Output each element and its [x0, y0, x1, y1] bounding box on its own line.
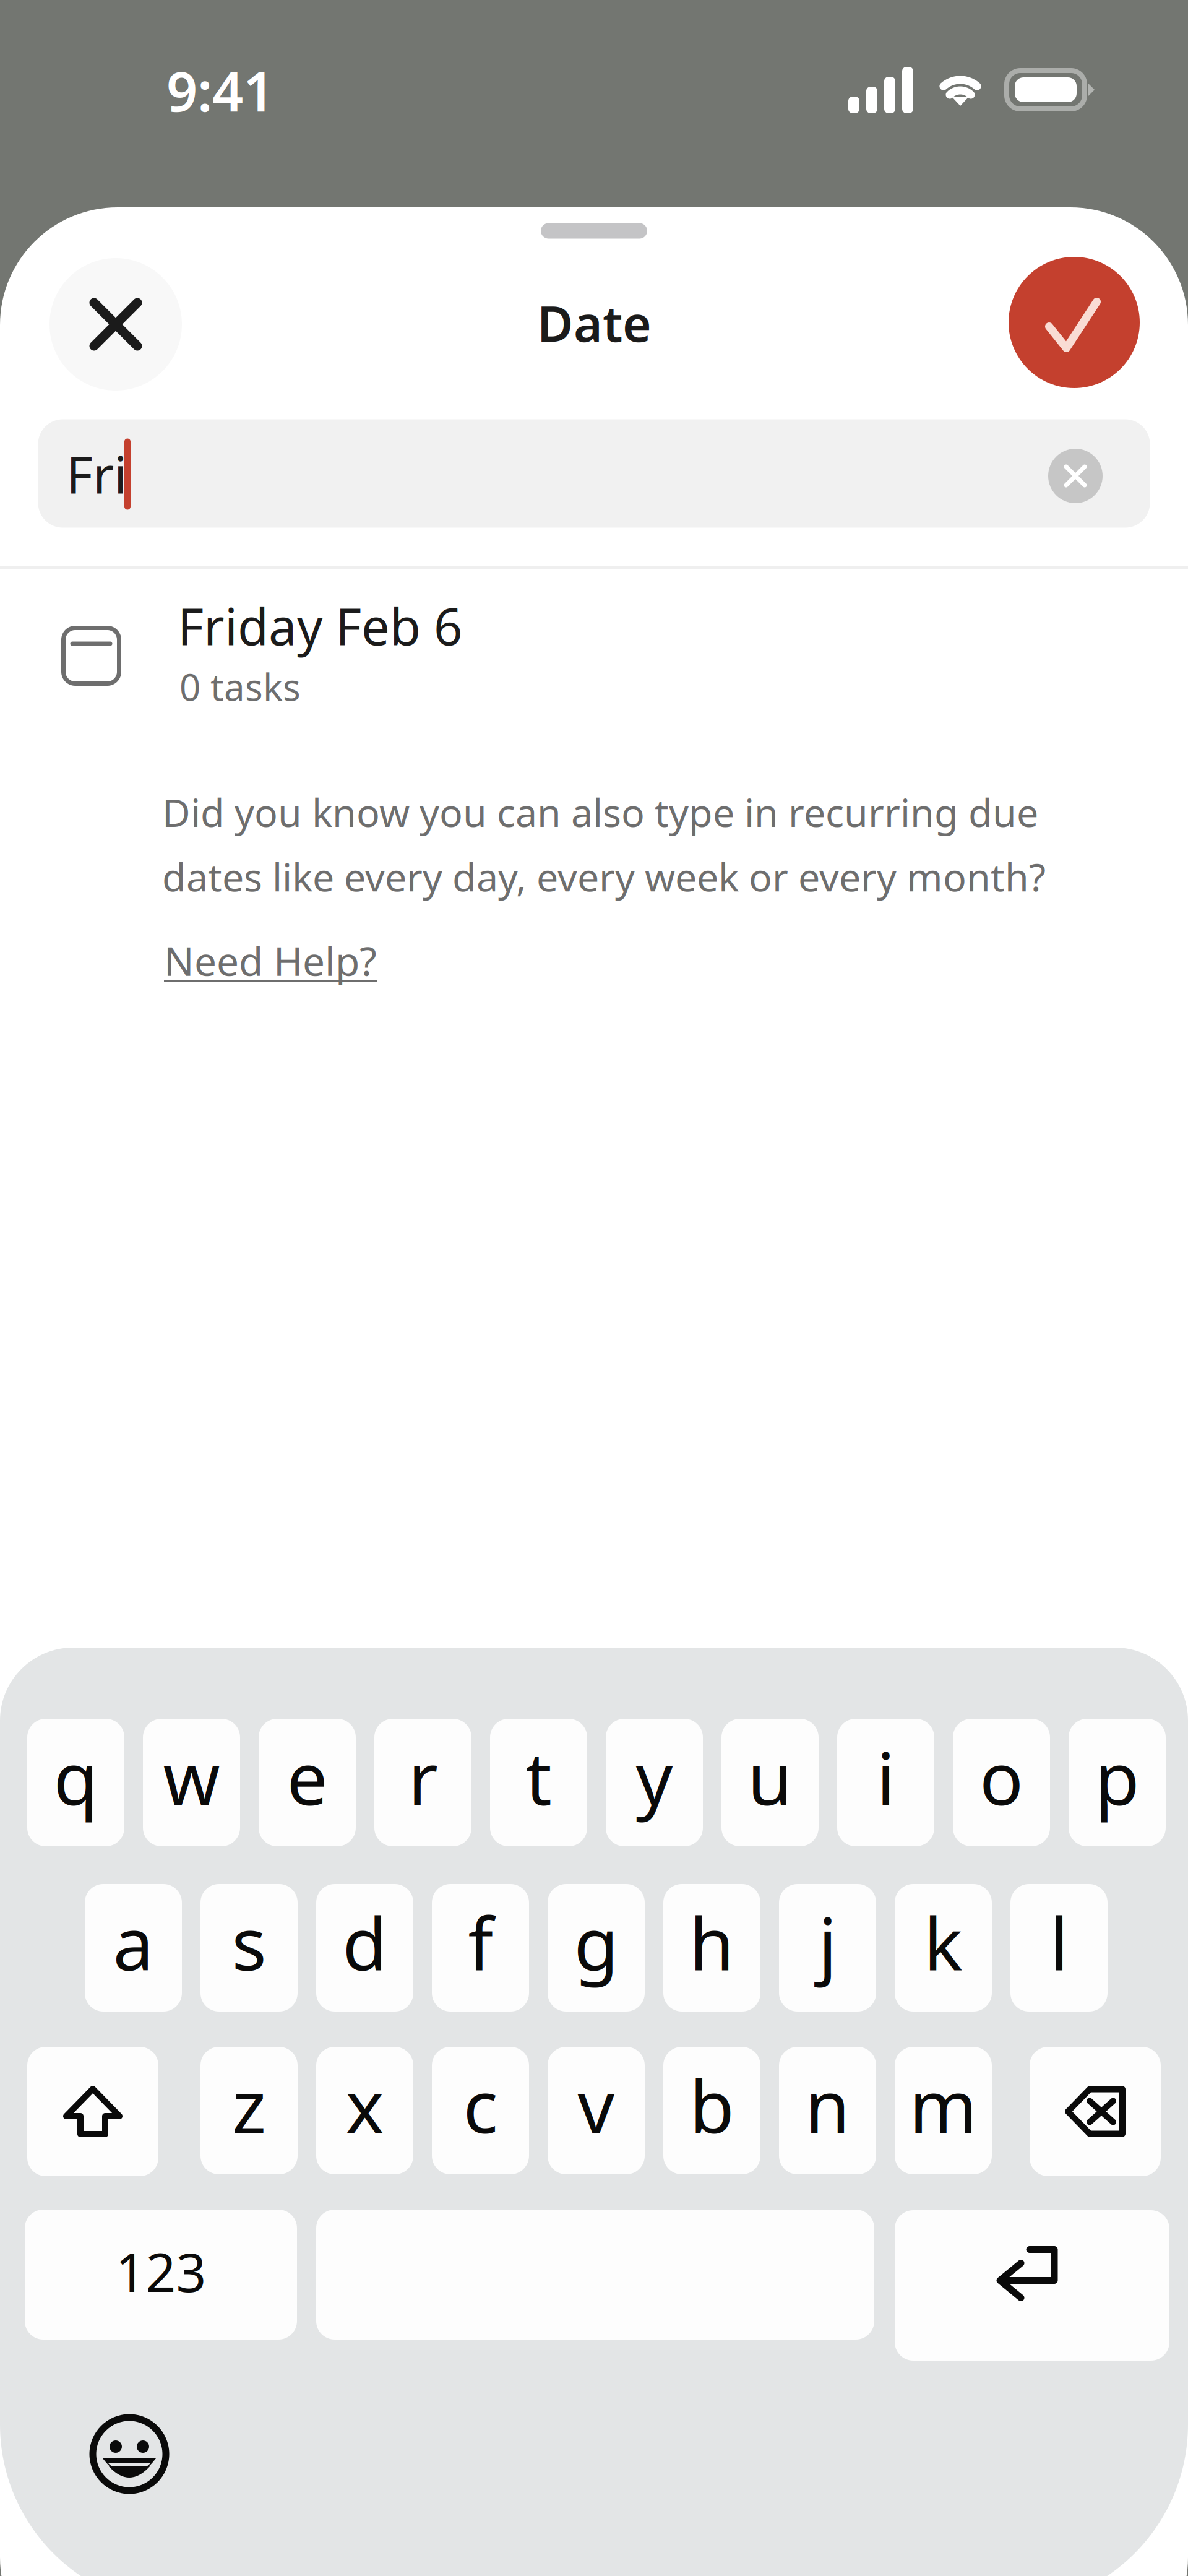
button[interactable]: l [1010, 1884, 1108, 2012]
button[interactable]: x [316, 2047, 413, 2174]
staticText: s [232, 1894, 266, 1990]
staticText: m [909, 2057, 977, 2153]
button[interactable]: o [953, 1719, 1050, 1846]
staticText: l [1050, 1894, 1068, 1990]
button[interactable]: e [259, 1719, 356, 1846]
staticText: Friday Feb 6 [178, 592, 463, 659]
staticText: t [526, 1729, 552, 1825]
button[interactable]: 123 [25, 2210, 297, 2340]
staticText: i [876, 1729, 895, 1825]
staticText: Need Help? [164, 934, 377, 987]
staticText: z [232, 2057, 266, 2153]
button[interactable]: Delete [1030, 2047, 1161, 2176]
button[interactable]: Close [49, 258, 182, 391]
staticText: x [346, 2057, 384, 2153]
staticText: h [689, 1894, 734, 1990]
staticText: 123 [115, 2236, 206, 2307]
button[interactable]: b [663, 2047, 760, 2174]
button[interactable]: Done [1009, 257, 1140, 388]
button[interactable]: j [779, 1884, 876, 2012]
staticText: n [805, 2057, 850, 2153]
button[interactable]: Need Help? [164, 939, 387, 982]
staticText: j [818, 1894, 837, 1990]
staticText: k [924, 1894, 963, 1990]
button[interactable]: g [548, 1884, 645, 2012]
staticText: Fri [66, 440, 127, 508]
button[interactable]: n [779, 2047, 876, 2174]
button[interactable]: i [837, 1719, 934, 1846]
button[interactable]: r [374, 1719, 471, 1846]
staticText: c [463, 2057, 498, 2153]
button[interactable]: Clear text [1048, 449, 1103, 503]
staticText: y [636, 1729, 673, 1825]
button[interactable]: f [432, 1884, 529, 2012]
button[interactable]: q [27, 1719, 124, 1846]
staticText: f [468, 1894, 493, 1990]
staticText: p [1095, 1729, 1139, 1825]
button[interactable]: return [895, 2210, 1169, 2361]
staticText: 0 tasks [179, 662, 301, 711]
staticText: e [287, 1729, 328, 1825]
button[interactable]: p [1069, 1719, 1166, 1846]
button[interactable]: v [548, 2047, 645, 2174]
button[interactable]: w [143, 1719, 240, 1846]
button[interactable]: d [316, 1884, 413, 2012]
button[interactable]: s [200, 1884, 298, 2012]
staticText: u [747, 1729, 793, 1825]
button[interactable]: h [663, 1884, 760, 2012]
staticText: g [574, 1894, 618, 1990]
staticText: a [113, 1894, 154, 1990]
staticText: Date [537, 290, 652, 355]
button[interactable]: z [200, 2047, 298, 2174]
button[interactable]: m [895, 2047, 992, 2174]
button[interactable]: Emoji keyboard [89, 2414, 170, 2494]
button[interactable]: y [606, 1719, 703, 1846]
staticText: d [342, 1894, 387, 1990]
staticText: q [54, 1729, 98, 1825]
staticText: Did you know you can also type in recurr… [162, 786, 1046, 902]
staticText: 9:41 [166, 54, 274, 127]
button[interactable]: t [490, 1719, 587, 1846]
staticText: r [408, 1729, 438, 1825]
staticText: o [979, 1729, 1023, 1825]
button[interactable]: Shift [27, 2047, 158, 2176]
button[interactable]: k [895, 1884, 992, 2012]
button[interactable]: c [432, 2047, 529, 2174]
button[interactable]: a [85, 1884, 182, 2012]
staticText: b [690, 2057, 734, 2153]
staticText: w [163, 1729, 220, 1825]
button[interactable]: u [721, 1719, 819, 1846]
staticText: v [578, 2057, 615, 2153]
